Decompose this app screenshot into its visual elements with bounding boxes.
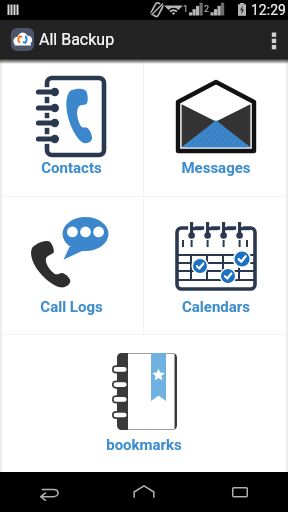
staticText: Call Logs [40,298,103,316]
button[interactable]: More options [260,20,288,58]
button[interactable]: Messages [144,58,288,196]
button[interactable]: bookmarks [0,335,288,472]
staticText: Contacts [41,159,102,177]
staticText: 12:29 [251,2,286,18]
staticText: 1 [183,4,189,15]
staticText: Messages [181,159,251,177]
button[interactable]: Call Logs [0,197,143,334]
staticText: Calendars [182,298,250,316]
button[interactable]: Calendars [144,197,288,334]
staticText: bookmarks [106,436,182,454]
button[interactable]: Back [0,472,96,512]
button[interactable]: Contacts [0,58,143,196]
button[interactable]: Recent apps [192,472,288,512]
staticText: All Backup [39,30,115,49]
button[interactable]: Home [96,472,192,512]
staticText: 2 [204,4,210,15]
